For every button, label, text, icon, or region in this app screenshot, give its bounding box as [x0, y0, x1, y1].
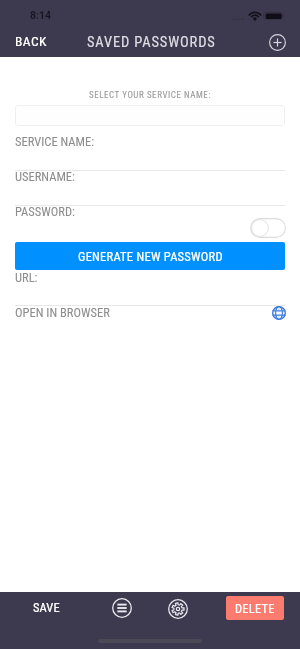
button[interactable]: Settings: [166, 597, 190, 621]
button[interactable]: Show password: [250, 218, 286, 238]
button[interactable]: DELETE: [226, 596, 284, 620]
staticText: SERVICE NAME:: [15, 134, 95, 149]
button[interactable]: USERNAME:: [0, 168, 300, 205]
staticText: SELECT YOUR SERVICE NAME:: [0, 90, 300, 101]
staticText: URL:: [15, 270, 38, 285]
button[interactable]: PASSWORD:: [0, 203, 300, 242]
staticText: GENERATE NEW PASSWORD: [78, 249, 223, 264]
staticText: OPEN IN BROWSER: [15, 305, 110, 320]
button[interactable]: BACK: [7, 26, 55, 55]
button[interactable]: SAVE: [25, 594, 68, 621]
staticText: 8:14: [30, 9, 52, 21]
button[interactable]: Select your service name: [15, 105, 285, 126]
staticText: PASSWORD:: [15, 204, 75, 219]
button[interactable]: Add password: [264, 29, 290, 55]
button[interactable]: URL:: [0, 269, 300, 305]
staticText: USERNAME:: [15, 169, 75, 184]
button[interactable]: GENERATE NEW PASSWORD: [15, 242, 285, 270]
button[interactable]: SERVICE NAME:: [0, 133, 300, 170]
staticText: SAVE: [33, 600, 60, 615]
staticText: BACK: [15, 33, 47, 49]
button[interactable]: OPEN IN BROWSER: [0, 305, 300, 335]
staticText: DELETE: [235, 601, 275, 616]
button[interactable]: Menu: [110, 596, 134, 620]
staticText: SAVED PASSWORDS: [87, 34, 216, 51]
